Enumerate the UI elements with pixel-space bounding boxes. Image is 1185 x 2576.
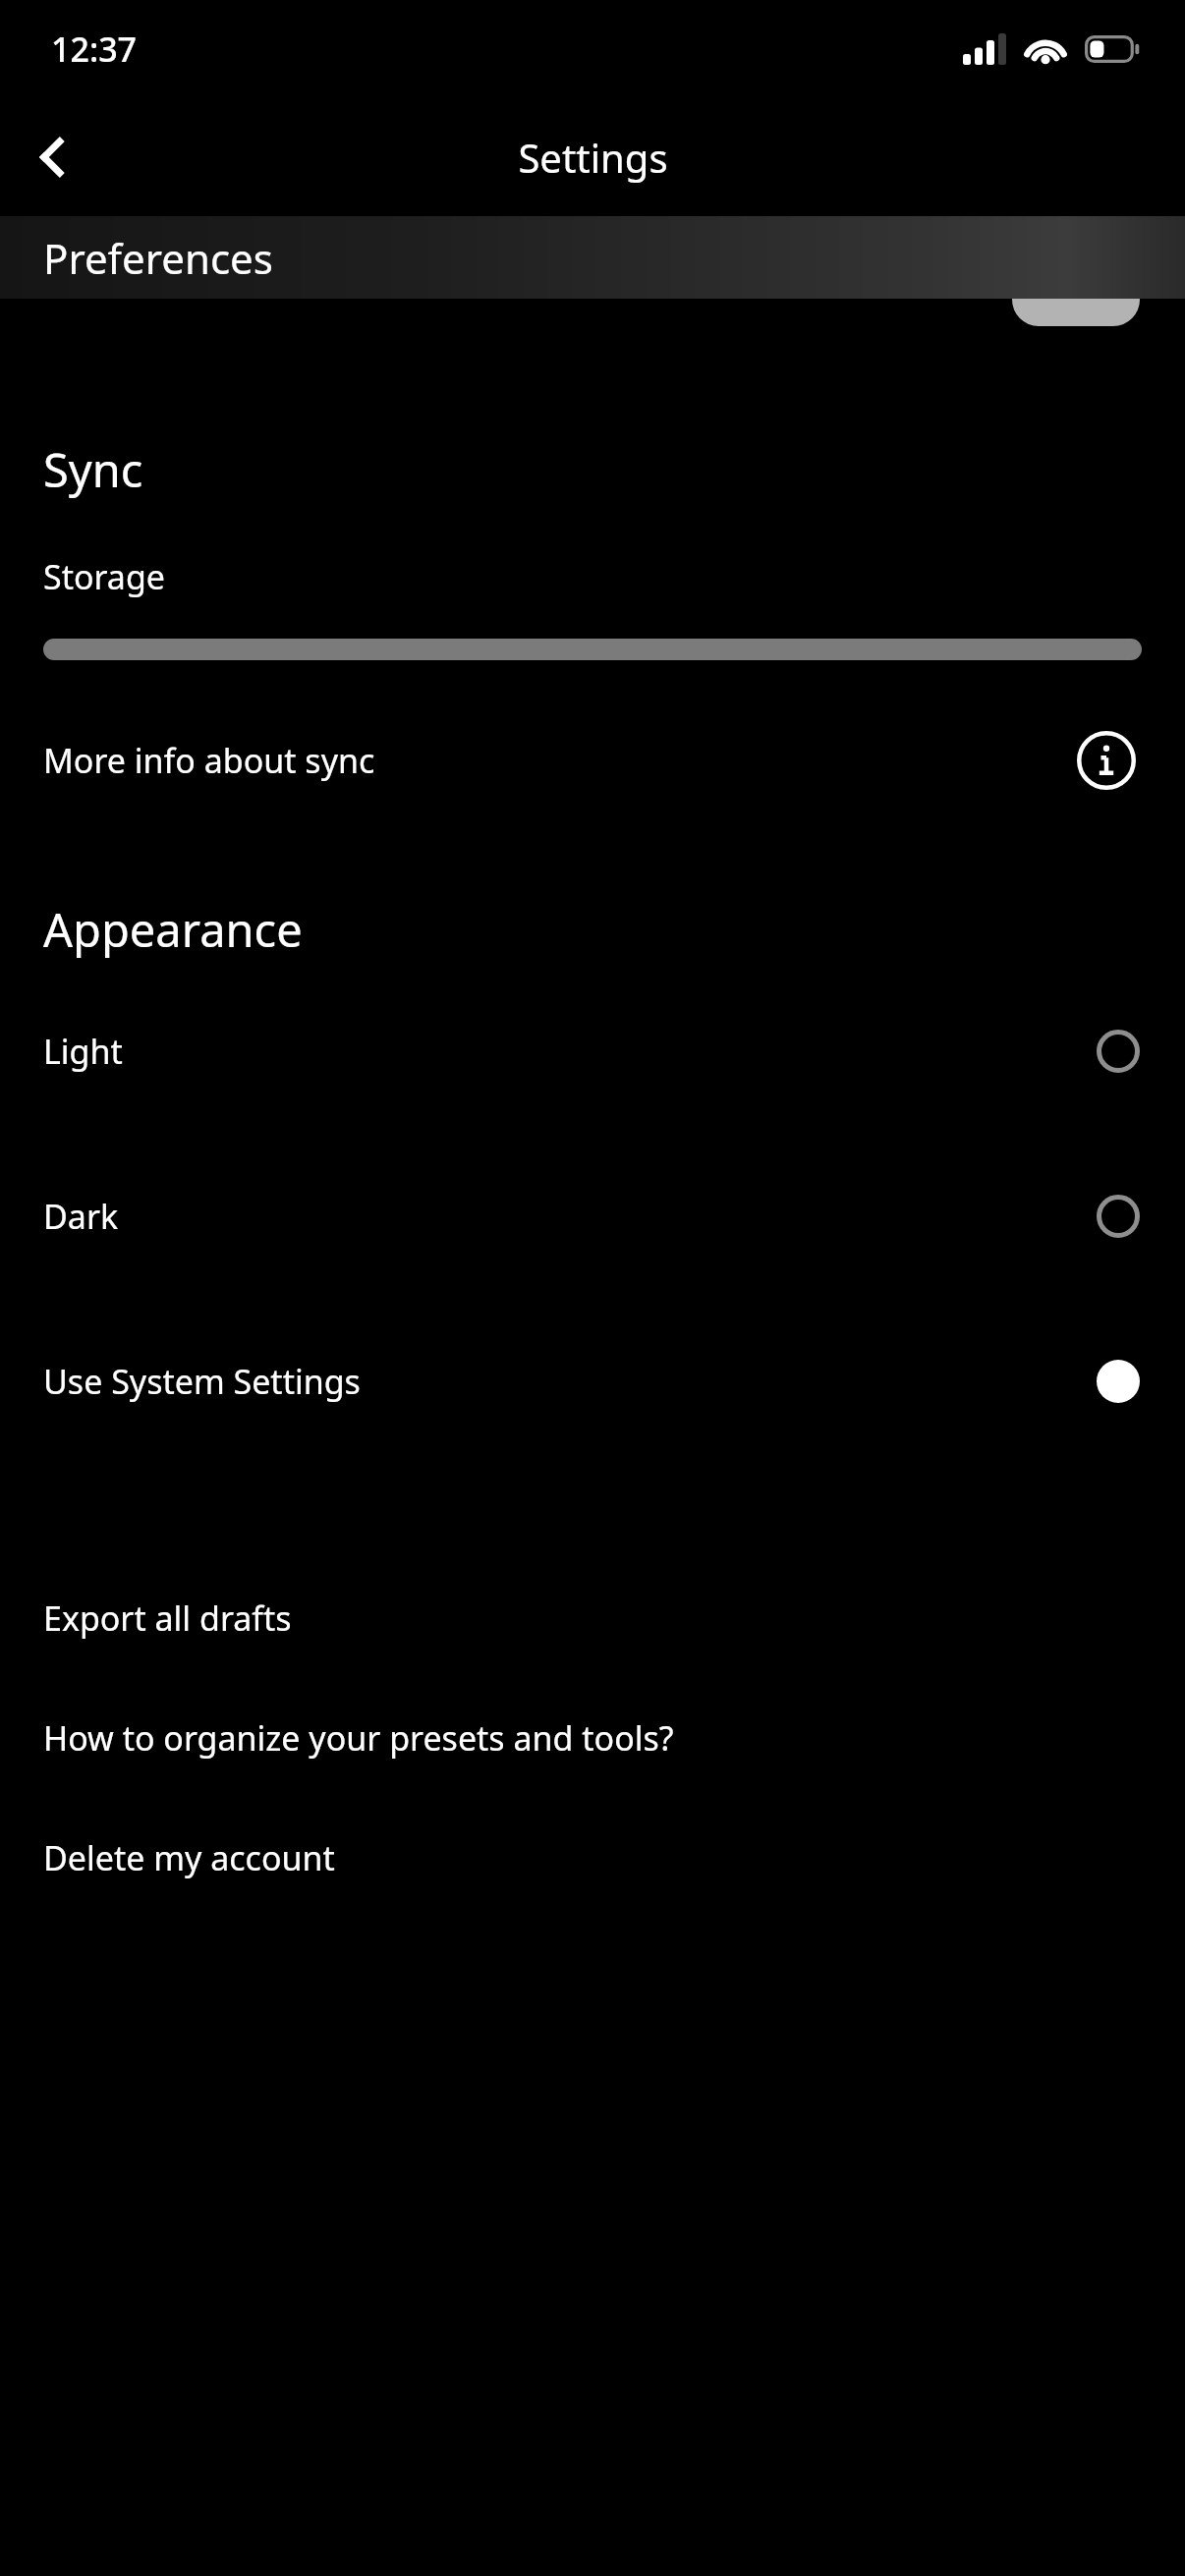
- button[interactable]: Dark: [43, 1171, 1142, 1261]
- button[interactable]: Export all drafts: [43, 1592, 1142, 1645]
- button[interactable]: More info about sync: [43, 715, 1142, 806]
- button[interactable]: Use System Settings: [43, 1336, 1142, 1427]
- staticText: Use System Settings: [43, 1359, 361, 1404]
- staticText: Light: [43, 1029, 123, 1074]
- staticText: Preferences: [43, 230, 273, 286]
- staticText: Delete my account: [43, 1835, 335, 1880]
- staticText: How to organize your presets and tools?: [43, 1715, 674, 1761]
- button[interactable]: More info about sync: [1071, 725, 1142, 796]
- button[interactable]: Light: [43, 1006, 1142, 1096]
- button[interactable]: How to organize your presets and tools?: [43, 1711, 1142, 1764]
- staticText: Sync: [43, 438, 143, 501]
- staticText: Storage: [43, 554, 166, 599]
- staticText: 12:37: [51, 27, 138, 72]
- staticText: Settings: [518, 131, 668, 184]
- staticText: Appearance: [43, 898, 303, 961]
- staticText: Dark: [43, 1194, 119, 1239]
- button[interactable]: Delete my account: [43, 1831, 1142, 1884]
- staticText: Export all drafts: [43, 1596, 292, 1641]
- staticText: More info about sync: [43, 738, 375, 783]
- button[interactable]: Back: [14, 116, 96, 198]
